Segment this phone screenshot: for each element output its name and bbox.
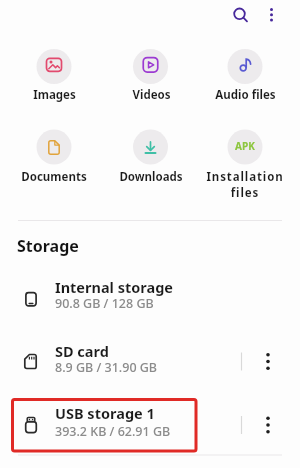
- staticText: Images: [33, 87, 76, 103]
- staticText: Storage: [17, 235, 79, 257]
- staticText: 8.9 GB / 31.90 GB: [55, 359, 158, 376]
- staticText: Installation files: [206, 169, 284, 201]
- staticText: Videos: [132, 87, 171, 103]
- staticText: 393.2 KB / 62.91 GB: [55, 423, 171, 440]
- staticText: 90.8 GB / 128 GB: [55, 295, 154, 312]
- staticText: Downloads: [119, 169, 183, 185]
- staticText: SD card: [55, 341, 109, 361]
- staticText: Documents: [21, 169, 87, 185]
- staticText: Internal storage: [55, 277, 174, 297]
- staticText: USB storage 1: [55, 403, 155, 423]
- staticText: Audio files: [215, 87, 276, 103]
- staticText: APK: [235, 139, 255, 153]
